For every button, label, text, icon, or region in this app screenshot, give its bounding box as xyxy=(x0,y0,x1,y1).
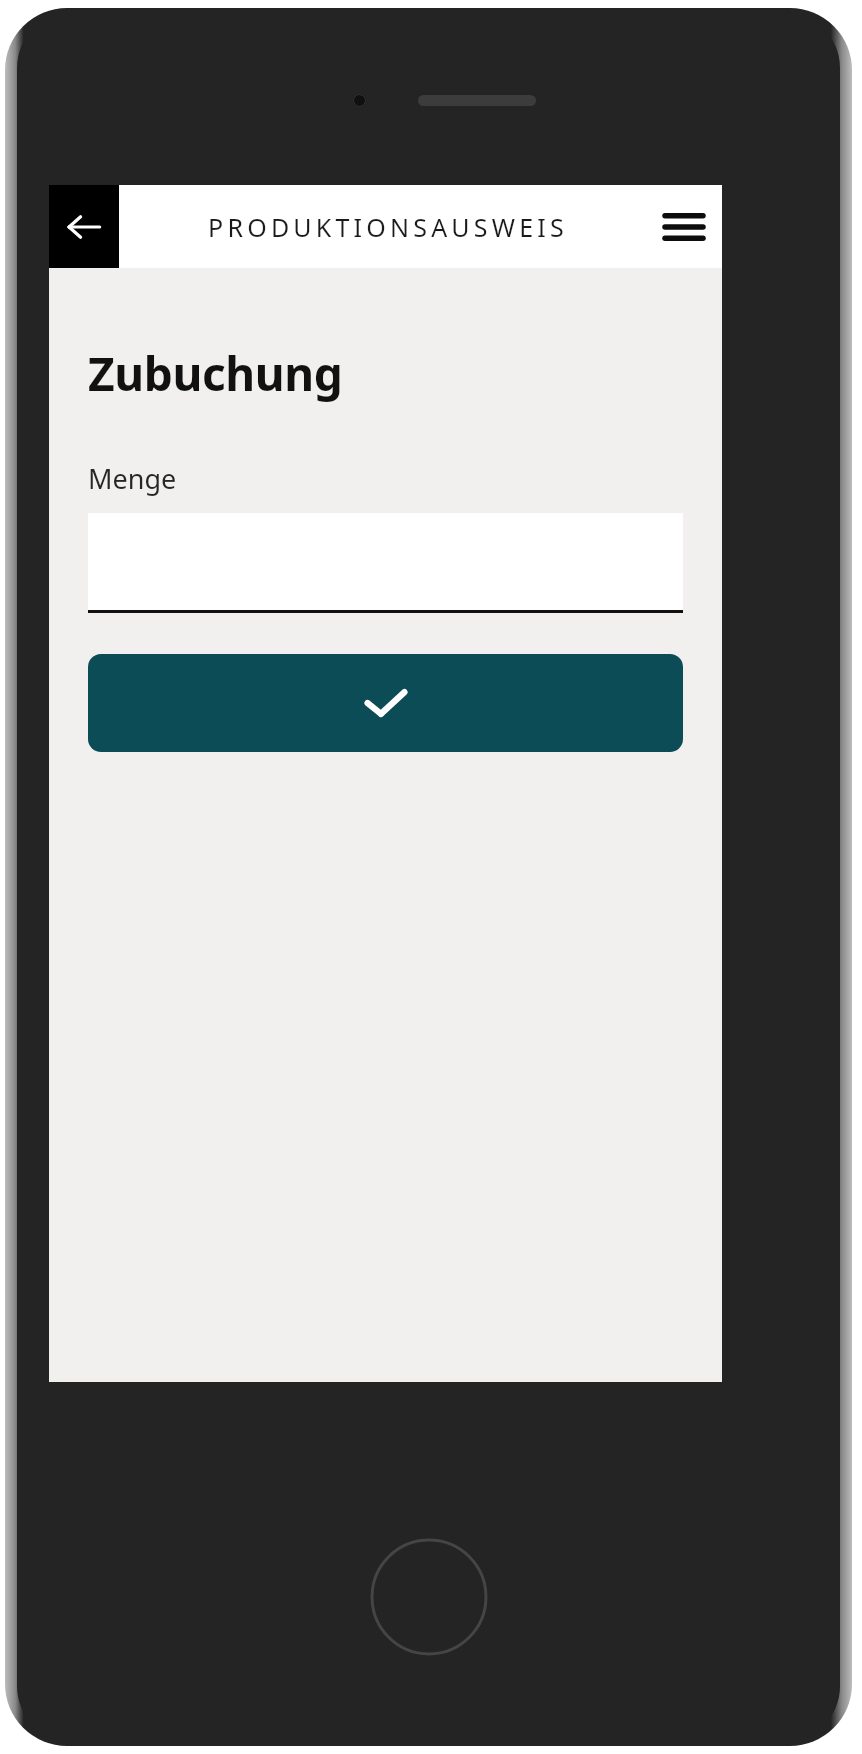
staticText: Menge xyxy=(88,460,177,497)
staticText: PRODUKTIONSAUSWEIS xyxy=(208,210,568,244)
button[interactable]: Menu xyxy=(652,195,716,259)
button[interactable]: Back xyxy=(49,185,119,268)
button[interactable] xyxy=(88,513,683,613)
button[interactable]: Bestätigen xyxy=(88,654,683,752)
staticText: Zubuchung xyxy=(88,342,343,405)
